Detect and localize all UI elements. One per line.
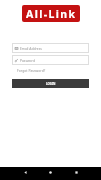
button[interactable]: LOGIN: [12, 79, 89, 88]
button[interactable]: Email Address: [12, 43, 89, 53]
button[interactable]: All-Link logo: [22, 5, 80, 22]
button[interactable]: Password: [12, 55, 89, 65]
staticText: Password: [20, 58, 35, 62]
button[interactable]: Recent apps: [64, 167, 89, 180]
staticText: Email Address: [20, 46, 42, 50]
button[interactable]: Back: [13, 167, 38, 180]
button[interactable]: Home: [38, 167, 63, 180]
staticText: LOGIN: [46, 82, 56, 86]
staticText: All-Link: [26, 7, 77, 21]
button[interactable]: Forgot Password?: [17, 68, 46, 73]
